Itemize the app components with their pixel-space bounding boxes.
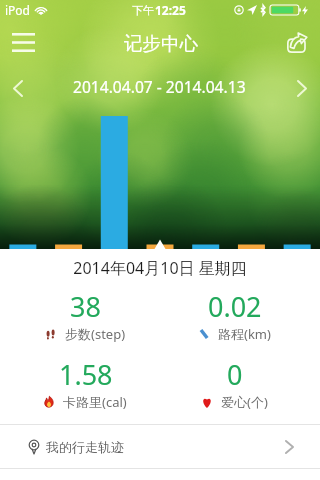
button[interactable]: Previous week	[4, 74, 32, 102]
staticText: 12:25	[155, 2, 186, 18]
staticText: iPod	[5, 2, 30, 18]
staticText: 1.58	[59, 356, 113, 393]
button[interactable]: 0	[160, 356, 309, 411]
staticText: 记步中心	[124, 32, 198, 55]
button[interactable]: Menu	[2, 21, 44, 63]
staticText: 下午	[132, 3, 154, 17]
staticText: 0	[227, 356, 243, 393]
staticText: 我的行走轨迹	[46, 439, 124, 455]
staticText: 爱心(个)	[221, 393, 268, 411]
staticText: 2014年04月10日 星期四	[0, 257, 320, 279]
staticText: 38	[70, 288, 101, 325]
button[interactable]: 1.58	[11, 356, 160, 411]
staticText: 0.02	[208, 288, 262, 325]
staticText: 2014.04.07 - 2014.04.13	[73, 76, 246, 97]
staticText: 卡路里(cal)	[63, 393, 127, 411]
button[interactable]: 0.02	[160, 288, 309, 343]
button[interactable]: 38	[11, 288, 160, 343]
staticText: 路程(km)	[218, 325, 271, 343]
button[interactable]: Share	[276, 21, 318, 63]
button[interactable]: Next week	[288, 74, 316, 102]
staticText: 步数(step)	[65, 325, 126, 343]
button[interactable]: 我的行走轨迹	[0, 425, 320, 468]
